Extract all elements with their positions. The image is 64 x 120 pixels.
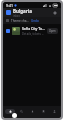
staticText: Sofia City Tour 2024 <box>22 26 45 31</box>
button[interactable]: Search <box>15 106 26 116</box>
staticText: Details, tickets & more <box>22 32 45 36</box>
button[interactable]: Home <box>5 106 15 116</box>
staticText: inbox <box>13 14 20 17</box>
button[interactable]: Saved <box>37 106 48 116</box>
button[interactable]: Select <box>6 29 10 33</box>
staticText: Theme changed · <box>11 19 30 23</box>
button[interactable]: Theme changed · <box>3 17 61 24</box>
button[interactable]: Alerts <box>26 106 37 116</box>
staticText: Undo <box>31 19 39 23</box>
button[interactable]: More options <box>52 10 58 16</box>
button[interactable]: Profile <box>48 106 59 116</box>
staticText: Open <box>49 29 56 33</box>
button[interactable]: App icon <box>6 10 11 15</box>
button[interactable]: Home indicator <box>12 113 17 118</box>
button[interactable]: Select <box>3 24 61 37</box>
button[interactable]: Open <box>47 28 58 34</box>
staticText: 9:41 <box>6 3 13 8</box>
staticText: Bulgaria <box>13 8 32 14</box>
